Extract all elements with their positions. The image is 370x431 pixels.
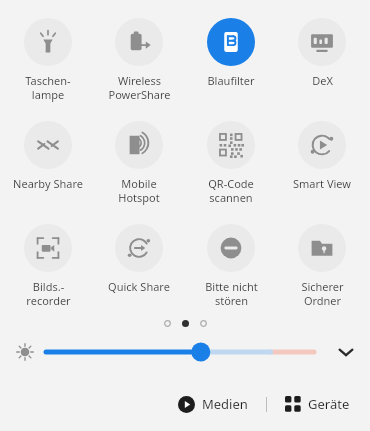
button[interactable]: Medien	[174, 391, 252, 417]
button[interactable]: Bitte nicht stören	[188, 224, 274, 308]
button[interactable]: Mobile Hotspot	[96, 121, 182, 205]
button[interactable]: Geräte	[281, 391, 354, 417]
button[interactable]: QR-Code scannen	[188, 121, 274, 205]
button[interactable]: Bilds.- recorder	[5, 224, 91, 308]
button[interactable]: Nearby Share	[5, 121, 91, 191]
button[interactable]: DeX	[279, 18, 365, 88]
staticText: Blaufilter	[207, 73, 255, 88]
button[interactable]: Brightness	[10, 339, 40, 365]
staticText: Geräte	[308, 395, 350, 413]
staticText: Medien	[202, 395, 248, 413]
staticText: Quick Share	[108, 279, 170, 294]
button[interactable]: Expand	[330, 339, 362, 365]
staticText: Smart View	[293, 176, 351, 191]
button[interactable]: Blaufilter	[188, 18, 274, 88]
staticText: Mobile Hotspot	[118, 176, 160, 205]
button[interactable]: Taschen- lampe	[5, 18, 91, 102]
staticText: Bitte nicht stören	[205, 279, 258, 308]
button[interactable]: Quick Share	[96, 224, 182, 294]
staticText: Bilds.- recorder	[26, 279, 71, 308]
staticText: Wireless PowerShare	[108, 73, 171, 102]
staticText: Sicherer Ordner	[301, 279, 344, 308]
button[interactable]	[46, 339, 320, 365]
staticText: Taschen- lampe	[25, 73, 71, 102]
button[interactable]: Wireless PowerShare	[96, 18, 182, 102]
staticText: Nearby Share	[13, 176, 83, 191]
staticText: DeX	[312, 73, 333, 88]
button[interactable]: Smart View	[279, 121, 365, 191]
staticText: QR-Code scannen	[208, 176, 254, 205]
button[interactable]: Sicherer Ordner	[279, 224, 365, 308]
